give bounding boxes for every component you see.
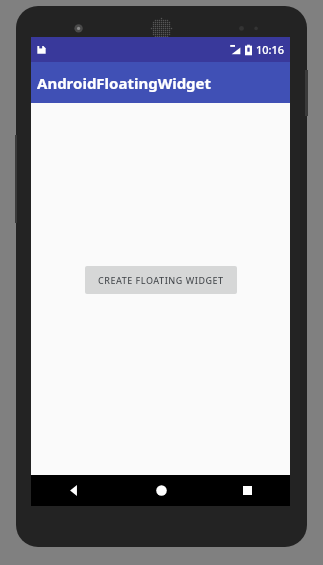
button[interactable]: Home bbox=[118, 475, 204, 506]
staticText: 10:16 bbox=[256, 42, 285, 57]
button[interactable]: Back bbox=[31, 475, 118, 506]
staticText: CREATE FLOATING WIDGET bbox=[98, 274, 224, 286]
staticText: AndroidFloatingWidget bbox=[37, 73, 212, 93]
button[interactable]: CREATE FLOATING WIDGET bbox=[85, 266, 237, 294]
button[interactable]: Recent apps bbox=[204, 475, 290, 506]
